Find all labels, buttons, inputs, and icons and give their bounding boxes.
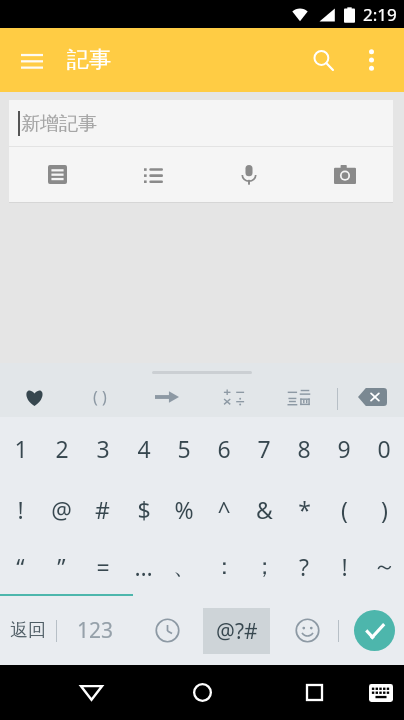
button[interactable]: ： xyxy=(204,539,244,594)
button[interactable]: $ xyxy=(123,480,164,539)
staticText: 6 xyxy=(217,433,231,464)
button[interactable]: 4 xyxy=(123,417,164,480)
staticText: ～ xyxy=(373,552,396,581)
button[interactable]: 123 xyxy=(67,596,123,665)
staticText: 3 xyxy=(96,433,110,464)
staticText: ! xyxy=(341,551,348,582)
staticText: ( xyxy=(341,494,348,525)
staticText: $ xyxy=(137,494,151,525)
button[interactable]: 1 xyxy=(0,417,41,480)
button[interactable]: New text note xyxy=(9,147,105,202)
staticText: ； xyxy=(253,552,276,581)
staticText: 1 xyxy=(14,433,28,464)
button[interactable]: Open navigation drawer xyxy=(0,28,63,92)
staticText: ： xyxy=(213,552,236,581)
button[interactable]: Recent apps xyxy=(281,665,347,720)
staticText: = xyxy=(96,551,110,582)
button[interactable]: More options xyxy=(347,28,396,92)
button[interactable]: ! xyxy=(0,480,41,539)
button[interactable]: # xyxy=(82,480,123,539)
button[interactable]: Chinese numerals xyxy=(276,382,322,412)
staticText: ! xyxy=(17,494,24,525)
button[interactable]: ～ xyxy=(364,539,404,594)
staticText: 0 xyxy=(377,433,391,464)
staticText: ) xyxy=(381,494,388,525)
button[interactable]: % xyxy=(164,480,204,539)
button[interactable]: 6 xyxy=(204,417,244,480)
button[interactable]: 0 xyxy=(364,417,404,480)
staticText: 123 xyxy=(77,616,114,645)
staticText: 7 xyxy=(257,433,271,464)
button[interactable]: 8 xyxy=(284,417,324,480)
staticText: 9 xyxy=(337,433,351,464)
button[interactable]: ? xyxy=(284,539,324,594)
button[interactable]: New voice note xyxy=(201,147,297,202)
button[interactable]: New photo note xyxy=(297,147,393,202)
staticText: ” xyxy=(57,551,66,582)
staticText: 返回 xyxy=(10,619,46,642)
button[interactable]: Brackets xyxy=(77,382,123,412)
staticText: 8 xyxy=(297,433,311,464)
button[interactable]: Enter xyxy=(348,596,400,665)
button[interactable]: * xyxy=(284,480,324,539)
staticText: # xyxy=(95,494,110,525)
button[interactable]: ^ xyxy=(204,480,244,539)
button[interactable]: 5 xyxy=(164,417,204,480)
button[interactable]: … xyxy=(123,539,164,594)
staticText: 5 xyxy=(177,433,191,464)
button[interactable]: New list xyxy=(105,147,201,202)
button[interactable]: 返回 xyxy=(0,596,56,665)
staticText: & xyxy=(256,494,273,525)
button[interactable]: 3 xyxy=(82,417,123,480)
button[interactable]: = xyxy=(82,539,123,594)
staticText: “ xyxy=(16,551,25,582)
staticText: ? xyxy=(299,551,309,582)
staticText: ^ xyxy=(217,494,231,525)
button[interactable]: “ xyxy=(0,539,41,594)
staticText: 、 xyxy=(173,552,196,581)
button[interactable]: ( xyxy=(324,480,364,539)
button[interactable]: @?# xyxy=(203,608,270,654)
staticText: * xyxy=(298,494,311,525)
button[interactable]: 9 xyxy=(324,417,364,480)
staticText: 新增記事 xyxy=(21,112,97,136)
button[interactable]: ； xyxy=(244,539,284,594)
button[interactable]: Change keyboard xyxy=(357,665,404,720)
staticText: @ xyxy=(51,494,72,525)
button[interactable]: Search xyxy=(299,28,347,92)
staticText: 記事 xyxy=(67,46,111,74)
staticText: ( ) xyxy=(93,386,107,408)
button[interactable]: 2 xyxy=(41,417,82,480)
button[interactable]: ” xyxy=(41,539,82,594)
button[interactable]: Home xyxy=(169,665,235,720)
button[interactable]: Recent xyxy=(139,596,195,665)
button[interactable]: Emoji xyxy=(279,596,335,665)
button[interactable]: Arrow xyxy=(144,382,190,412)
button[interactable]: & xyxy=(244,480,284,539)
button[interactable]: ! xyxy=(324,539,364,594)
staticText: 2:19 xyxy=(363,3,397,26)
button[interactable]: Delete xyxy=(352,382,392,412)
button[interactable]: 7 xyxy=(244,417,284,480)
button[interactable]: 、 xyxy=(164,539,204,594)
staticText: 4 xyxy=(137,433,151,464)
button[interactable]: Math symbols xyxy=(211,382,257,412)
staticText: @?# xyxy=(216,617,258,646)
staticText: 2 xyxy=(55,433,69,464)
staticText: % xyxy=(174,494,194,525)
button[interactable]: Back xyxy=(58,665,124,720)
button[interactable]: ) xyxy=(364,480,404,539)
button[interactable]: Favorites xyxy=(11,382,57,412)
staticText: … xyxy=(134,551,153,582)
button[interactable]: @ xyxy=(41,480,82,539)
